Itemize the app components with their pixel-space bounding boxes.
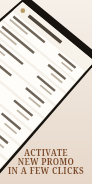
staticText: ACTIVATE NEW PROMO IN A FEW CLICKS xyxy=(8,147,84,177)
